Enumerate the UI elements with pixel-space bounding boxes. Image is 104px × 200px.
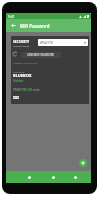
staticText: SAVE xyxy=(14,96,19,99)
button[interactable]: Nav item 2 xyxy=(46,171,60,183)
button[interactable]: Hidden xyxy=(13,79,24,83)
button[interactable]: Share via QR code xyxy=(13,88,40,92)
staticText: Connection xyxy=(13,86,27,89)
button[interactable]: Refresh xyxy=(12,51,18,57)
button[interactable]: WPA2 PSK xyxy=(38,39,88,46)
button[interactable]: GENERATE PASSWORD xyxy=(21,52,61,58)
staticText: WPA2 PSK xyxy=(40,41,54,45)
staticText: choose mode xyxy=(13,44,29,47)
staticText: Network name (SSID) xyxy=(13,61,38,64)
staticText: 9:41 xyxy=(8,14,15,19)
staticText: Wifi Password xyxy=(20,23,50,29)
staticText: BLUEBOX xyxy=(13,73,32,78)
button[interactable]: Nav item 1 xyxy=(22,171,36,183)
button[interactable]: SAVE xyxy=(13,96,19,99)
button[interactable]: Back xyxy=(6,19,20,32)
staticText: GENERATE PASSWORD xyxy=(27,53,55,57)
staticText: Password xyxy=(13,70,25,73)
button[interactable]: Nav item 3 xyxy=(68,171,82,183)
button[interactable]: Add network xyxy=(79,159,87,167)
staticText: SECURITY xyxy=(13,39,30,44)
